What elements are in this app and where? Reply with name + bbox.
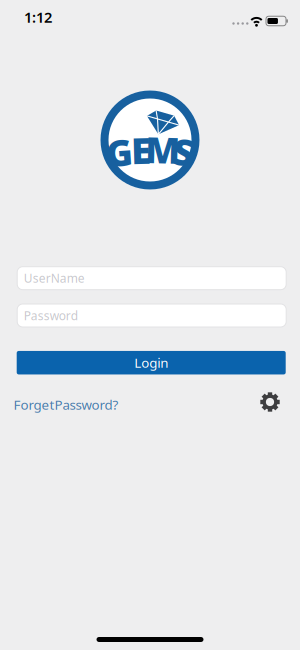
staticText: ForgetPassword?: [13, 396, 118, 413]
button[interactable]: Login: [17, 351, 286, 374]
staticText: G: [106, 128, 133, 176]
staticText: S: [173, 128, 194, 175]
staticText: UserName: [24, 270, 85, 286]
staticText: 1:12: [24, 7, 52, 27]
staticText: Password: [24, 307, 78, 323]
staticText: M: [145, 126, 180, 173]
button[interactable]: Settings: [259, 391, 280, 412]
staticText: Login: [134, 354, 168, 371]
staticText: E: [131, 126, 151, 174]
button[interactable]: ForgetPassword?: [13, 396, 118, 413]
